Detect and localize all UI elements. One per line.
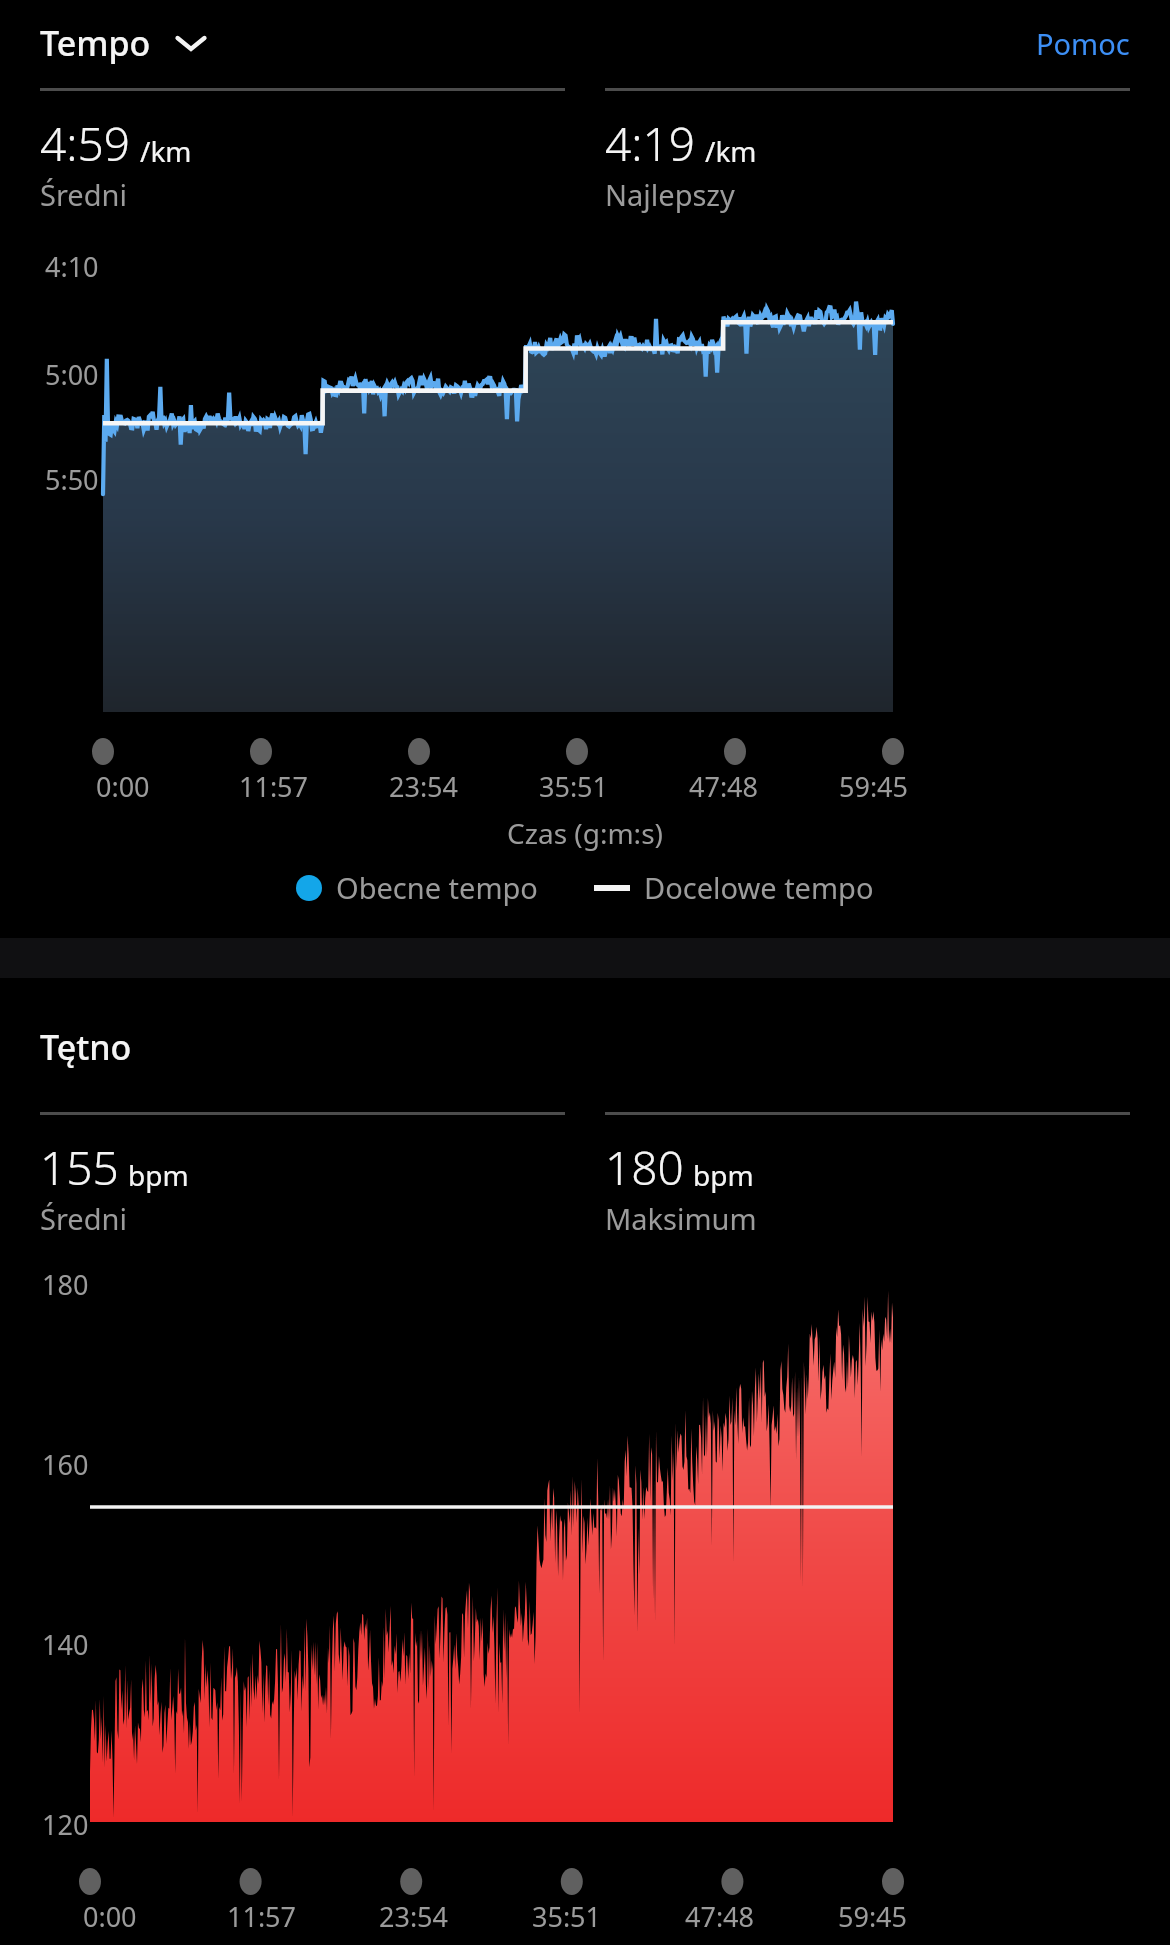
staticText: 23:54 <box>379 1898 449 1935</box>
button[interactable]: 155 <box>40 1112 565 1238</box>
staticText: 4:19 <box>605 112 696 175</box>
staticText: Docelowe tempo <box>644 868 874 907</box>
staticText: bpm <box>693 1156 754 1194</box>
staticText: Najlepszy <box>605 175 735 214</box>
staticText: 140 <box>42 1626 89 1663</box>
button[interactable]: Tempo <box>40 14 217 72</box>
staticText: 59:45 <box>839 768 909 805</box>
staticText: 11:57 <box>227 1898 297 1935</box>
staticText: 4:59 <box>40 112 131 175</box>
staticText: 4:10 <box>45 248 99 285</box>
staticText: 160 <box>42 1446 89 1483</box>
staticText: 23:54 <box>389 768 459 805</box>
staticText: 5:00 <box>45 356 99 393</box>
staticText: 0:00 <box>96 768 150 805</box>
staticText: Obecne tempo <box>336 868 538 907</box>
staticText: /km <box>140 132 192 170</box>
staticText: 0:00 <box>83 1898 137 1935</box>
staticText: 35:51 <box>539 768 609 805</box>
staticText: 59:45 <box>838 1898 908 1935</box>
staticText: Tętno <box>40 1024 132 1070</box>
staticText: Pomoc <box>1036 24 1130 63</box>
staticText: 180 <box>42 1266 89 1303</box>
button[interactable]: 180 <box>605 1112 1130 1238</box>
button[interactable]: Obecne tempo <box>288 860 546 915</box>
button[interactable]: 4:59 <box>40 88 565 214</box>
staticText: 5:50 <box>45 461 99 498</box>
staticText: Średni <box>40 1199 127 1238</box>
staticText: 180 <box>605 1136 684 1199</box>
staticText: 155 <box>40 1136 119 1199</box>
staticText: Maksimum <box>605 1199 757 1238</box>
staticText: Średni <box>40 175 127 214</box>
staticText: 35:51 <box>532 1898 602 1935</box>
staticText: 47:48 <box>685 1898 755 1935</box>
staticText: 120 <box>42 1806 89 1843</box>
button[interactable]: 4:19 <box>605 88 1130 214</box>
staticText: Tempo <box>40 20 151 66</box>
button[interactable]: Docelowe tempo <box>586 860 882 915</box>
staticText: bpm <box>128 1156 189 1194</box>
staticText: /km <box>705 132 757 170</box>
staticText: Czas (g:m:s) <box>0 814 1170 852</box>
staticText: 47:48 <box>689 768 759 805</box>
button[interactable]: Pomoc <box>996 12 1170 75</box>
staticText: 11:57 <box>239 768 309 805</box>
